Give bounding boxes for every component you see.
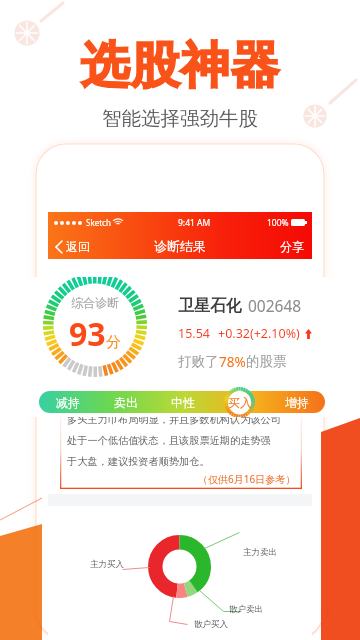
staticText: 15.54 xyxy=(178,325,210,342)
staticText: 诊断结果 xyxy=(154,238,206,254)
staticText: 散户买入 xyxy=(194,619,228,630)
staticText: +0.32(+2.10%) xyxy=(218,325,300,342)
staticText: 返回 xyxy=(66,239,90,254)
button[interactable]: 增持 xyxy=(268,391,325,413)
staticText: 处于一个低估值状态，且该股票近期的走势强 xyxy=(67,434,271,447)
staticText: （仅供6月16日参考） xyxy=(198,472,296,486)
staticText: 002648 xyxy=(248,295,302,316)
staticText: 主力买入 xyxy=(90,559,124,570)
button[interactable]: 返回 xyxy=(48,235,96,258)
staticText: 主力卖出 xyxy=(243,547,277,558)
staticText: Sketch xyxy=(86,217,111,228)
button[interactable] xyxy=(211,391,268,413)
staticText: 78% xyxy=(219,353,246,371)
button[interactable]: 中性 xyxy=(154,391,211,413)
staticText: 选股神器 xyxy=(80,35,280,97)
staticText: 卫星石化 xyxy=(178,296,242,316)
staticText: 100% xyxy=(267,217,289,229)
staticText: 分 xyxy=(106,333,121,352)
staticText: 增持 xyxy=(285,395,309,410)
staticText: 智能选择强劲牛股 xyxy=(102,106,258,131)
staticText: 9:41 AM xyxy=(178,217,211,229)
button[interactable]: 买入 xyxy=(224,387,255,417)
staticText: 多头主力巾布局明显，并且多数机构认为该公司 xyxy=(67,413,281,426)
staticText: 综合诊断 xyxy=(71,295,119,310)
staticText: 于大盘，建议投资者顺势加仓。 xyxy=(67,455,210,468)
button[interactable]: 分享 xyxy=(272,234,312,259)
staticText: 散户卖出 xyxy=(229,604,263,615)
button[interactable]: 卖出 xyxy=(97,391,154,413)
staticText: 打败了 xyxy=(178,353,219,370)
staticText: 中性 xyxy=(171,395,195,410)
button[interactable]: 减持 xyxy=(39,391,97,413)
staticText: 减持 xyxy=(56,395,80,410)
staticText: 买入 xyxy=(228,395,252,410)
staticText: 卖出 xyxy=(114,395,138,410)
staticText: 的股票 xyxy=(246,353,287,370)
staticText: 93 xyxy=(69,312,106,356)
